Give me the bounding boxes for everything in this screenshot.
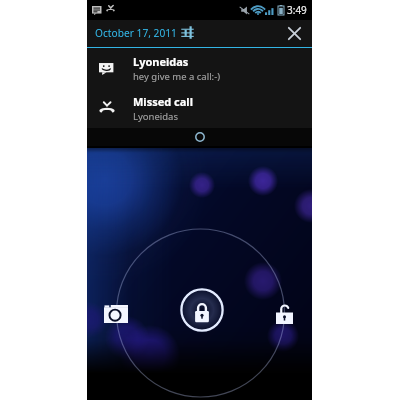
- staticText: Lyoneidas: [133, 54, 189, 69]
- staticText: hey give me a call:-): [133, 70, 221, 83]
- button[interactable]: Camera: [104, 305, 128, 323]
- button[interactable]: Lyoneidas: [87, 48, 312, 88]
- staticText: October 17, 2011: [95, 26, 177, 40]
- button[interactable]: Unlock shortcut: [276, 302, 293, 324]
- button[interactable]: Close: [288, 27, 301, 40]
- button[interactable]: Settings: [181, 26, 194, 39]
- staticText: Missed call: [133, 94, 193, 109]
- button[interactable]: Missed call: [87, 88, 312, 128]
- staticText: Lyoneidas: [133, 110, 178, 123]
- button[interactable]: Unlock: [179, 287, 225, 333]
- staticText: 3:49: [287, 3, 307, 17]
- button[interactable]: Close shade: [87, 128, 312, 146]
